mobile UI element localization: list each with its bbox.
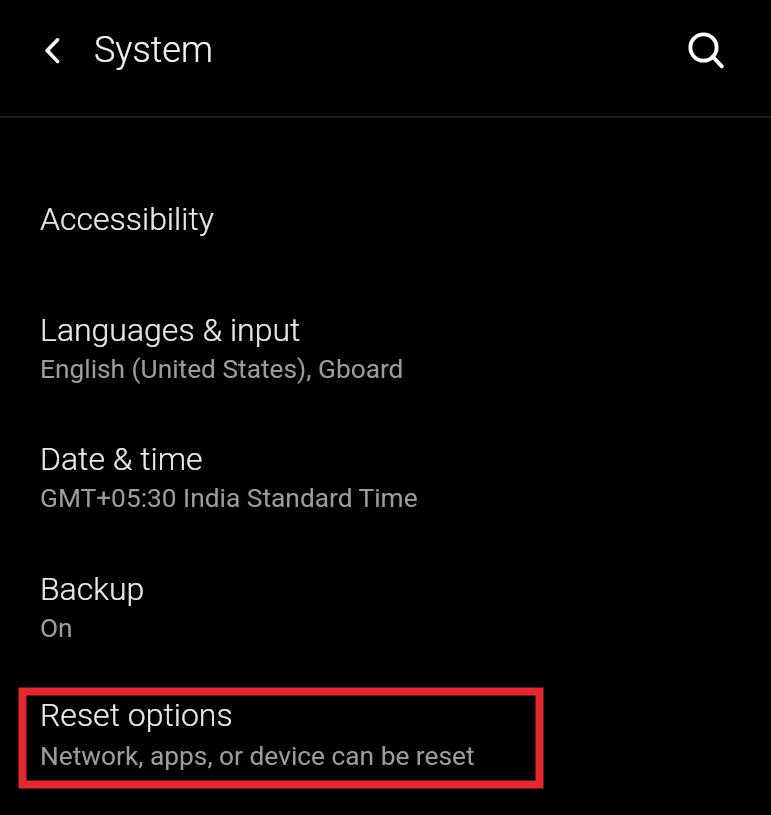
staticText: Date & time (40, 440, 203, 478)
staticText: GMT+05:30 India Standard Time (40, 483, 418, 514)
button[interactable]: Accessibility (0, 144, 771, 256)
button[interactable]: Backup (0, 514, 771, 644)
staticText: English (United States), Gboard (40, 354, 404, 384)
staticText: On (40, 613, 73, 644)
staticText: Network, apps, or device can be reset (40, 741, 475, 772)
staticText: Reset options (40, 696, 233, 734)
staticText: Accessibility (40, 200, 214, 238)
button[interactable]: Languages & input (0, 256, 771, 384)
button[interactable]: Navigate up (24, 22, 81, 79)
staticText: Languages & input (40, 311, 301, 349)
button[interactable]: Reset options (0, 644, 771, 774)
button[interactable]: Search settings (675, 20, 733, 78)
staticText: Backup (40, 570, 145, 608)
button[interactable]: Date & time (0, 384, 771, 514)
staticText: System (94, 29, 213, 71)
